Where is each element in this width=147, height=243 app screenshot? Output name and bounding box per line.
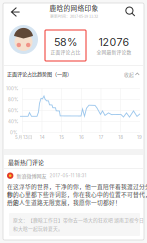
staticText: 你的心里都下些许词影，你在我心中的位置不可替代，一定: [7, 190, 147, 207]
staticText: 鹿晗的网络印象: [49, 3, 98, 13]
staticText: 0%: [10, 130, 17, 135]
staticText: 原文：【鹿晗工作日】带你去一场大的狂欢吧 湖南卫视今日: [13, 216, 144, 223]
button[interactable]: Back: [6, 4, 24, 20]
staticText: 19: [137, 134, 142, 140]
staticText: 14: [40, 134, 45, 140]
staticText: 新浪微博网友: [16, 172, 46, 179]
staticText: 后的人生道路无限宽展，我愿你一切都好！: [7, 198, 121, 206]
staticText: 12076: [98, 36, 129, 48]
button[interactable]: Search: [123, 4, 138, 20]
staticText: 18: [118, 134, 123, 140]
staticText: 收起: [124, 71, 134, 78]
staticText: 5月13日: [15, 134, 33, 140]
staticText: 80%: [8, 97, 18, 102]
staticText: 最新热门评论: [8, 158, 44, 166]
staticText: 在这浮华的世界，干净的你，他一直陪伴着我渡过分分秒，: [7, 182, 147, 199]
button[interactable]: 新浪微博网友: [7, 172, 86, 179]
staticText: 17: [99, 134, 104, 140]
staticText: 正面评论占比趋势图（一周）: [7, 70, 72, 77]
staticText: 60%: [8, 108, 18, 113]
staticText: 更新时间：2017-05-19 11:32: [50, 13, 98, 19]
staticText: 正面评论占比: [50, 48, 80, 55]
staticText: 15: [59, 134, 64, 140]
staticText: 和大晗一起玩转夏天。: [13, 225, 63, 232]
staticText: 100%: [6, 86, 18, 91]
staticText: 40%: [8, 119, 18, 124]
staticText: 58%: [54, 36, 77, 48]
button[interactable]: 收起: [124, 71, 140, 78]
staticText: 全网最新评论数: [96, 48, 131, 55]
staticText: 2017-05-11 18:31: [49, 173, 86, 178]
staticText: 16: [79, 134, 84, 140]
